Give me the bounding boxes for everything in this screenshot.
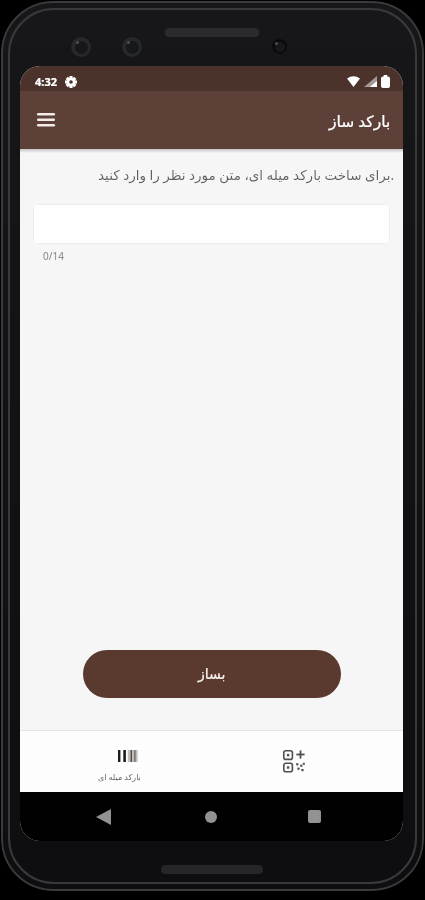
button[interactable]: بارکد میله ای — [64, 730, 184, 792]
button[interactable] — [30, 104, 62, 136]
button[interactable] — [196, 795, 226, 838]
staticText: برای ساخت بارکد میله ای، متن مورد نظر را… — [98, 166, 395, 184]
staticText: بارکد میله ای — [98, 771, 141, 782]
button[interactable] — [33, 204, 390, 244]
button[interactable] — [299, 795, 329, 838]
button[interactable] — [88, 795, 118, 838]
button[interactable] — [234, 730, 354, 792]
staticText: بساز — [198, 666, 226, 682]
staticText: بارکد ساز — [329, 110, 391, 131]
staticText: 4:32 — [35, 74, 57, 89]
staticText: 0/14 — [43, 249, 64, 263]
button[interactable]: بساز — [83, 650, 341, 698]
